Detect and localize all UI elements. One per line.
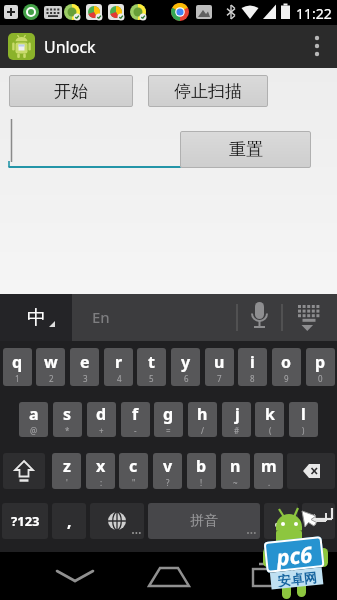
button[interactable]: h (188, 402, 217, 437)
button[interactable]: z (52, 453, 81, 489)
button[interactable]: k (255, 402, 284, 437)
staticText: ) (302, 425, 305, 436)
button[interactable]: r (104, 348, 133, 386)
staticText: p (315, 351, 326, 373)
button[interactable]: a (19, 402, 48, 437)
button[interactable]: 中 (0, 294, 72, 341)
staticText: : (100, 477, 103, 488)
button[interactable] (302, 503, 335, 539)
staticText: + (99, 425, 104, 436)
staticText: c (129, 455, 138, 477)
staticText: ?123 (11, 512, 40, 530)
staticText: g (163, 403, 174, 425)
button[interactable] (303, 25, 337, 68)
staticText: 7 (217, 373, 222, 384)
staticText: 3 (83, 373, 88, 384)
staticText: 8 (250, 373, 255, 384)
button[interactable]: s (53, 402, 82, 437)
button[interactable] (8, 117, 204, 169)
staticText: v (163, 455, 173, 477)
staticText: i (250, 351, 255, 373)
staticText: d (96, 403, 107, 425)
staticText: 11:22 (296, 4, 332, 23)
staticText: 5 (149, 373, 154, 384)
staticText: h (197, 403, 208, 425)
button[interactable]: f (121, 402, 150, 437)
button[interactable] (47, 552, 103, 600)
button[interactable]: w (36, 348, 65, 386)
staticText: y (181, 351, 191, 373)
button[interactable]: 拼音 (148, 503, 260, 539)
staticText: o (281, 351, 292, 373)
staticText: t (148, 351, 155, 373)
button[interactable]: v (153, 453, 182, 489)
button[interactable] (141, 552, 197, 600)
staticText: = (166, 425, 171, 436)
staticText: 。 (274, 512, 288, 530)
staticText: 安卓网 (277, 569, 317, 589)
button[interactable]: 停止扫描 (148, 75, 268, 107)
button[interactable]: q (3, 348, 32, 386)
staticText: ? (166, 477, 170, 488)
button[interactable]: d (87, 402, 116, 437)
button[interactable] (287, 453, 335, 489)
button[interactable]: ?123 (2, 503, 48, 539)
staticText: k (265, 403, 275, 425)
staticText: ' (66, 477, 68, 488)
staticText: l (301, 403, 306, 425)
button[interactable]: c (119, 453, 148, 489)
staticText: m (261, 455, 277, 477)
button[interactable]: i (238, 348, 267, 386)
button[interactable]: 开始 (9, 75, 133, 107)
staticText: e (80, 351, 90, 373)
staticText: 拼音 (190, 512, 218, 530)
staticText: 9 (284, 373, 289, 384)
staticText: * (65, 425, 70, 436)
staticText: 中 (27, 306, 46, 330)
button[interactable]: , (52, 503, 86, 539)
button[interactable]: m (254, 453, 283, 489)
staticText: 4 (117, 373, 122, 384)
staticText: n (230, 455, 241, 477)
staticText: 开始 (54, 81, 88, 102)
staticText: b (196, 455, 207, 477)
staticText: pc6 (275, 538, 314, 572)
staticText: 1 (15, 373, 20, 384)
staticText: x (96, 455, 106, 477)
staticText: En (92, 307, 110, 327)
staticText: ~ (233, 477, 238, 488)
staticText: , (67, 510, 72, 532)
button[interactable]: b (187, 453, 216, 489)
button[interactable]: y (171, 348, 200, 386)
button[interactable]: t (137, 348, 166, 386)
button[interactable]: e (70, 348, 99, 386)
staticText: z (63, 455, 71, 477)
button[interactable] (90, 503, 144, 539)
button[interactable]: o (272, 348, 301, 386)
button[interactable]: u (205, 348, 234, 386)
staticText: u (214, 351, 225, 373)
staticText: a (29, 403, 39, 425)
button[interactable]: g (154, 402, 183, 437)
staticText: r (115, 351, 123, 373)
button[interactable] (3, 453, 45, 489)
staticText: - (134, 425, 137, 436)
staticText: 0 (318, 373, 323, 384)
button[interactable]: p (306, 348, 335, 386)
button[interactable]: x (86, 453, 115, 489)
staticText: / (201, 425, 204, 436)
staticText: . (268, 477, 271, 488)
button[interactable]: 重置 (180, 131, 311, 168)
staticText: # (234, 425, 240, 436)
staticText: ( (269, 425, 272, 436)
button[interactable]: n (221, 453, 250, 489)
button[interactable] (235, 552, 291, 600)
staticText: Unlock (44, 36, 96, 58)
staticText: @ (30, 425, 38, 436)
staticText: s (63, 403, 72, 425)
button[interactable]: l (289, 402, 318, 437)
staticText: 重置 (229, 139, 263, 160)
button[interactable]: j (222, 402, 251, 437)
staticText: f (132, 403, 139, 425)
button[interactable]: 。 (264, 503, 298, 539)
